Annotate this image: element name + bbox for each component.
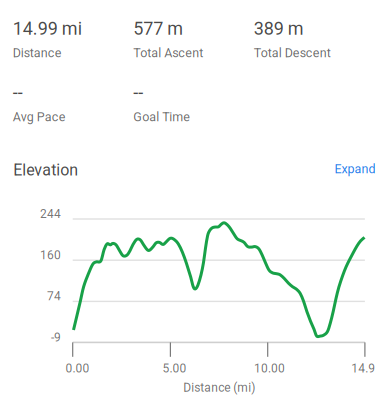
staticText: -9 — [51, 330, 61, 344]
staticText: -- — [13, 82, 23, 103]
staticText: Expand — [334, 162, 375, 176]
staticText: Distance — [13, 46, 62, 60]
staticText: Total Ascent — [133, 46, 203, 60]
staticText: Goal Time — [133, 110, 190, 124]
staticText: 14.99 mi — [13, 18, 82, 39]
staticText: 244 — [40, 207, 61, 221]
staticText: 0.00 — [65, 361, 89, 375]
staticText: Total Descent — [254, 46, 331, 60]
staticText: Avg Pace — [13, 110, 66, 124]
staticText: 389 m — [254, 18, 304, 39]
staticText: 5.00 — [163, 361, 187, 375]
staticText: Distance (mi) — [183, 381, 255, 395]
staticText: 14.9 — [351, 361, 375, 375]
staticText: 74 — [47, 289, 61, 303]
staticText: Elevation — [13, 161, 78, 179]
staticText: 577 m — [133, 18, 183, 39]
staticText: 10.00 — [254, 361, 285, 375]
staticText: -- — [133, 82, 143, 103]
staticText: 160 — [40, 248, 61, 262]
button[interactable]: Expand — [315, 158, 375, 180]
